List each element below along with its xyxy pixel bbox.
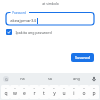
staticText: o <box>82 90 86 97</box>
staticText: 9 <box>83 86 85 89</box>
staticText: 6 <box>53 86 55 89</box>
button[interactable]: 0 <box>89 85 99 99</box>
button[interactable]: 3 <box>19 85 29 99</box>
button[interactable]: Voice input <box>90 75 97 82</box>
staticText: Password <box>12 11 26 15</box>
staticText: p <box>92 90 96 97</box>
staticText: 1 <box>5 86 7 89</box>
staticText: 0 <box>93 86 95 89</box>
button[interactable]: 4 <box>29 85 39 99</box>
staticText: y <box>53 90 56 97</box>
staticText: i <box>73 90 75 97</box>
staticText: sa <box>48 76 52 81</box>
button[interactable]: 8 <box>69 85 79 99</box>
staticText: Susunod <box>75 55 90 60</box>
staticText: r <box>33 90 36 97</box>
staticText: 5 <box>43 86 45 89</box>
staticText: u <box>62 90 66 97</box>
staticText: q <box>4 90 8 97</box>
staticText: 8 <box>73 86 75 89</box>
button[interactable]: Susunod <box>71 53 94 62</box>
staticText: 2 <box>14 86 16 89</box>
staticText: ang <box>73 76 80 81</box>
staticText: 4 <box>33 86 35 89</box>
staticText: t <box>43 90 45 97</box>
staticText: e <box>23 90 26 97</box>
staticText: na <box>20 76 25 81</box>
staticText: 7 <box>63 86 65 89</box>
staticText: Ipakita ang password <box>15 30 52 35</box>
button[interactable]: Ipakita ang password <box>6 29 52 35</box>
button[interactable]: ang <box>63 73 90 84</box>
button[interactable]: sa <box>36 73 63 84</box>
staticText: at simbolo <box>42 1 59 6</box>
staticText: 3 <box>23 86 25 89</box>
button[interactable]: Google search <box>3 76 9 82</box>
button[interactable]: 5 <box>39 85 49 99</box>
staticText: G <box>5 77 8 82</box>
button[interactable]: 1 <box>1 85 10 99</box>
button[interactable]: 2 <box>10 85 19 99</box>
button[interactable]: 7 <box>59 85 69 99</box>
button[interactable]: na <box>9 73 36 84</box>
button[interactable]: Password <box>5 11 95 26</box>
staticText: akeajpmar34 <box>10 18 36 24</box>
button[interactable]: 9 <box>79 85 89 99</box>
staticText: w <box>13 90 17 97</box>
button[interactable]: 6 <box>49 85 59 99</box>
